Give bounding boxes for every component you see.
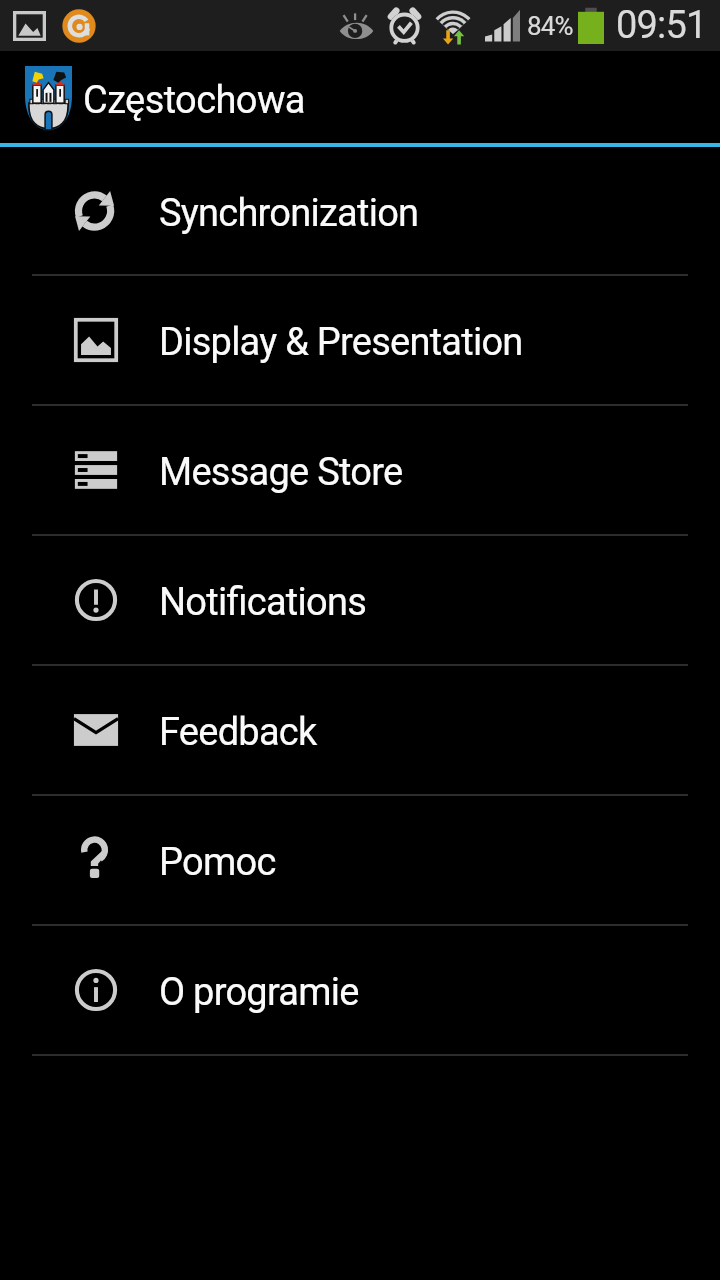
staticText: Notifications <box>159 580 367 625</box>
button[interactable]: Display and Presentation <box>0 276 720 404</box>
staticText: Message Store <box>159 450 403 495</box>
staticText: 84% <box>527 11 573 41</box>
staticText: Display & Presentation <box>159 320 523 365</box>
button[interactable]: Notifications <box>0 536 720 664</box>
staticText: Pomoc <box>159 840 276 885</box>
button[interactable]: Synchronization <box>0 147 720 274</box>
staticText: Częstochowa <box>83 78 305 123</box>
button[interactable]: Feedback <box>0 666 720 794</box>
staticText: Feedback <box>159 710 317 755</box>
button[interactable]: Pomoc <box>0 796 720 924</box>
staticText: Synchronization <box>159 191 419 236</box>
button[interactable]: Message Store <box>0 406 720 534</box>
staticText: 09:51 <box>616 3 707 48</box>
staticText: O programie <box>159 970 359 1015</box>
button[interactable]: O programie <box>0 926 720 1054</box>
